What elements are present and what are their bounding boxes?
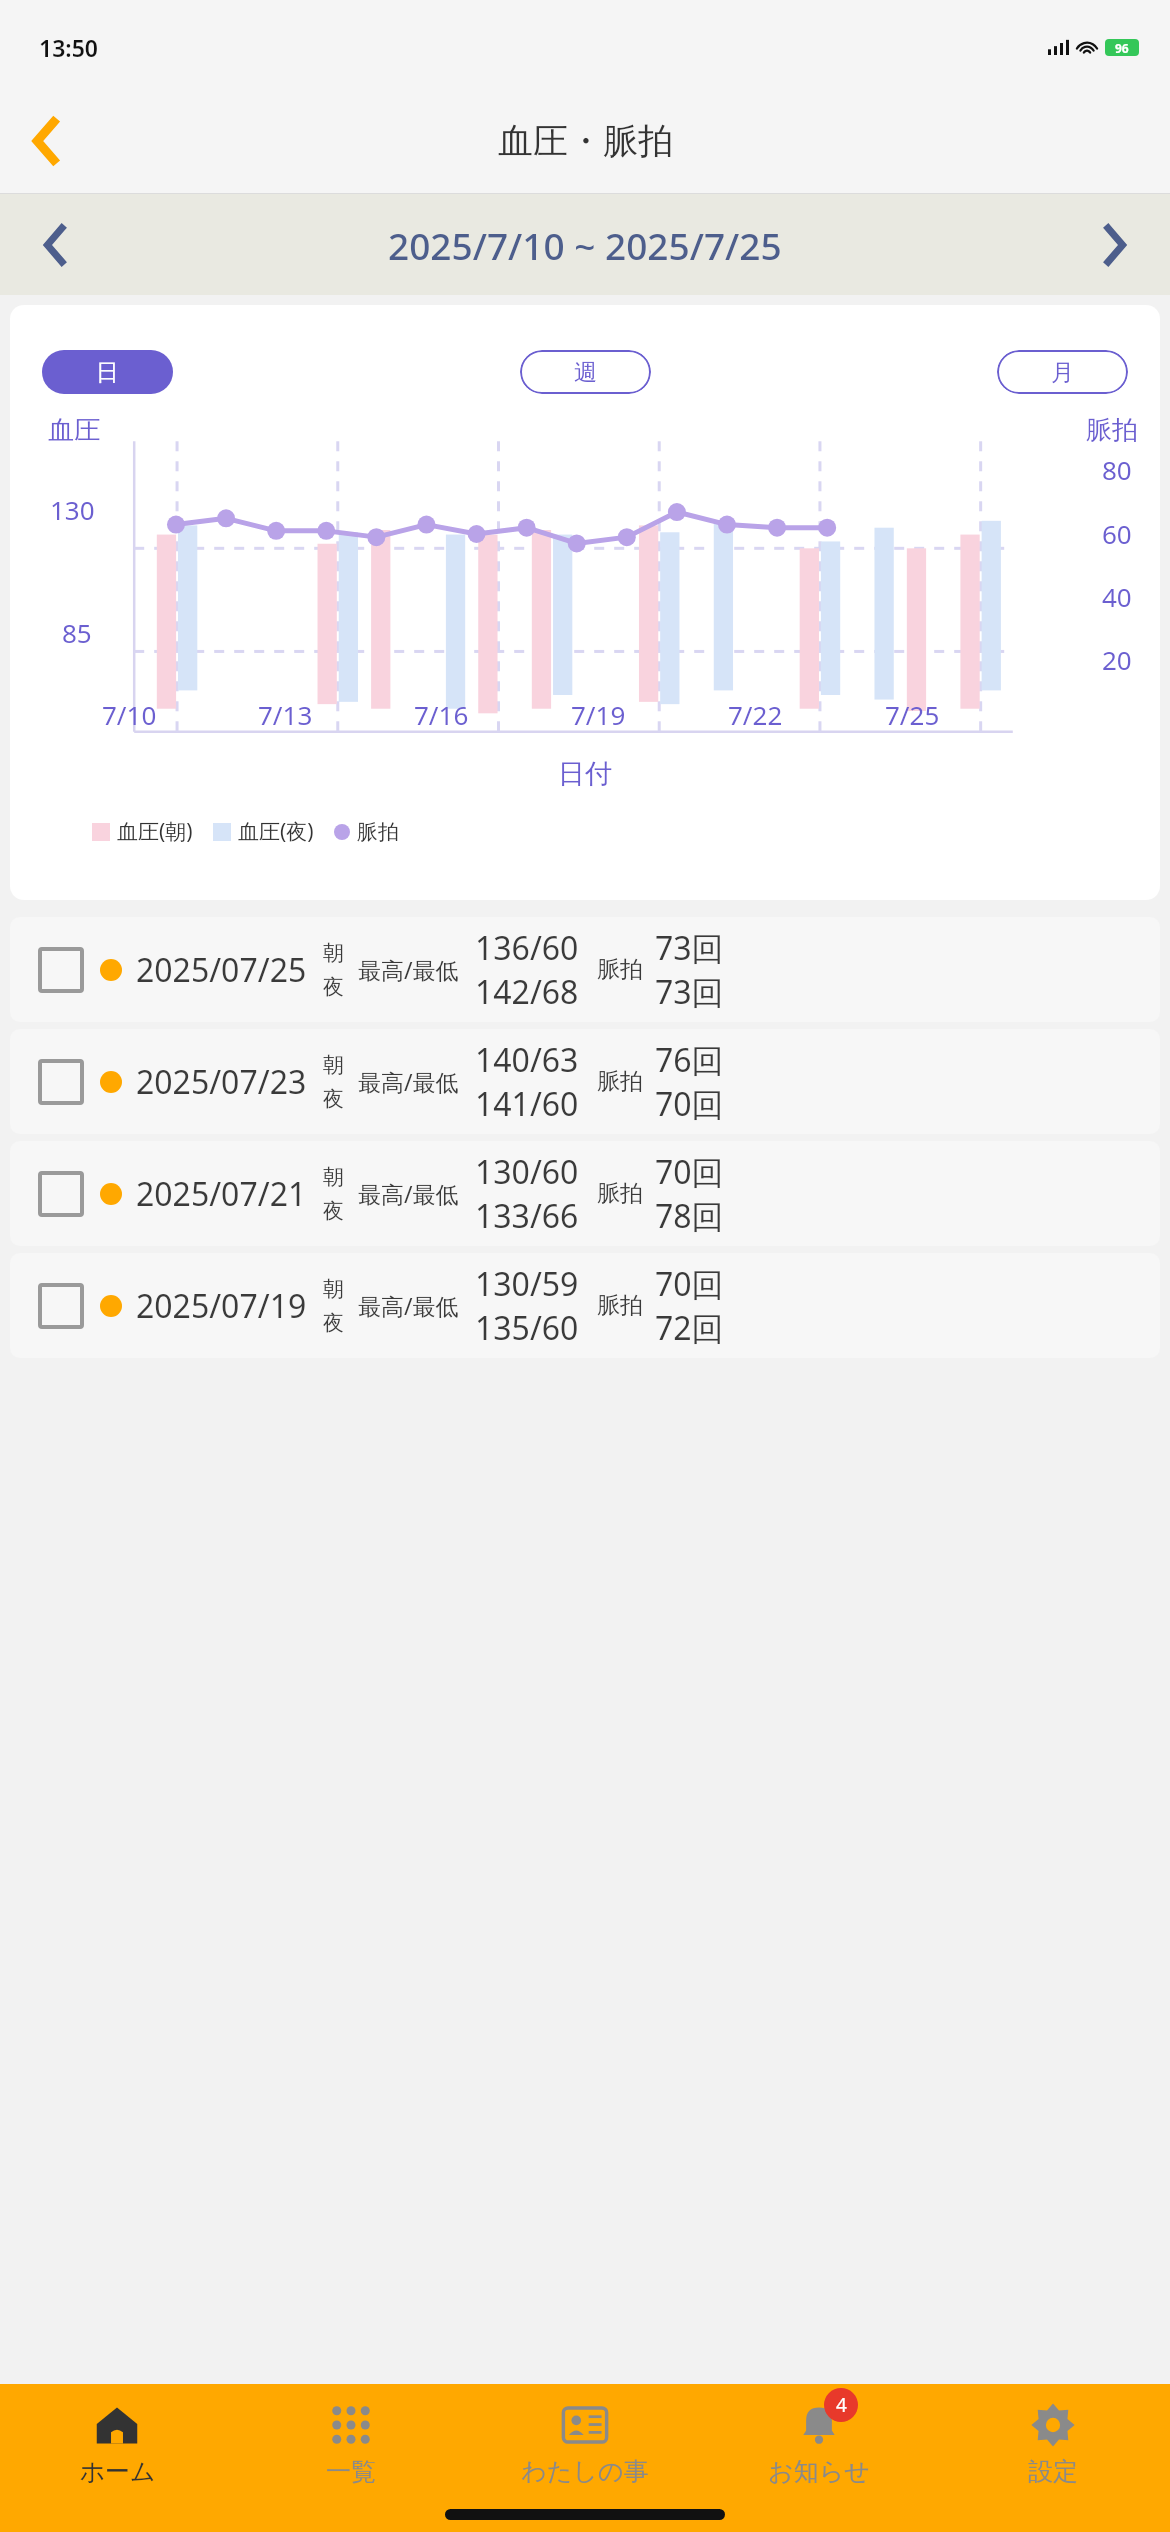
button[interactable]: 4 — [702, 2402, 936, 2487]
staticText: 142/68 — [475, 970, 579, 1014]
button[interactable]: 一覧 — [234, 2402, 468, 2487]
staticText: 血圧 — [48, 414, 100, 447]
button[interactable]: Next period — [1085, 215, 1145, 275]
staticText: 最高/最低 — [358, 954, 459, 985]
staticText: 130/59 — [475, 1262, 579, 1306]
staticText: 135/60 — [475, 1306, 579, 1350]
staticText: 血圧(朝) — [117, 817, 193, 846]
staticText: 脈拍 — [597, 1291, 643, 1320]
staticText: 夜 — [323, 974, 344, 1000]
button[interactable]: 設定 — [936, 2402, 1170, 2487]
staticText: 脈拍 — [597, 955, 643, 984]
staticText: 月 — [1051, 358, 1074, 387]
staticText: 70回 — [655, 1150, 724, 1194]
staticText: 85 — [62, 615, 92, 650]
staticText: 脈拍 — [1086, 414, 1138, 447]
staticText: 朝 — [323, 940, 344, 966]
button[interactable]: 月 — [997, 350, 1128, 394]
staticText: 7/25 — [885, 697, 940, 732]
staticText: 13:50 — [39, 32, 98, 63]
staticText: 140/63 — [475, 1038, 579, 1082]
staticText: わたしの事 — [521, 2456, 649, 2487]
staticText: 一覧 — [326, 2456, 376, 2487]
staticText: 朝 — [323, 1164, 344, 1190]
staticText: 7/19 — [571, 697, 626, 732]
staticText: お知らせ — [768, 2456, 870, 2487]
staticText: 136/60 — [475, 926, 579, 970]
button[interactable]: 2025/07/19 — [10, 1253, 1160, 1358]
staticText: 130/60 — [475, 1150, 579, 1194]
button[interactable]: 2025/07/23 — [10, 1029, 1160, 1134]
staticText: 日付 — [558, 757, 612, 791]
staticText: ホーム — [79, 2456, 156, 2487]
staticText: 2025/7/10 ~ 2025/7/25 — [388, 220, 782, 270]
staticText: 脈拍 — [357, 819, 399, 845]
staticText: 夜 — [323, 1310, 344, 1336]
staticText: 133/66 — [475, 1194, 579, 1238]
staticText: 最高/最低 — [358, 1290, 459, 1321]
button[interactable]: 2025/07/25 — [10, 917, 1160, 1022]
staticText: 血圧(夜) — [238, 817, 314, 846]
button[interactable]: ホーム — [0, 2402, 234, 2487]
staticText: 7/10 — [102, 697, 157, 732]
staticText: 2025/07/19 — [136, 1284, 307, 1328]
staticText: 70回 — [655, 1082, 724, 1126]
staticText: 週 — [574, 358, 597, 387]
staticText: 70回 — [655, 1262, 724, 1306]
staticText: 76回 — [655, 1038, 724, 1082]
staticText: 2025/07/25 — [136, 948, 307, 992]
staticText: 2025/07/21 — [136, 1172, 307, 1216]
staticText: 夜 — [323, 1198, 344, 1224]
staticText: 40 — [1102, 579, 1132, 614]
staticText: 73回 — [655, 970, 724, 1014]
staticText: 血圧・脈拍 — [498, 119, 673, 163]
button[interactable]: 2025/07/21 — [10, 1141, 1160, 1246]
staticText: 4 — [836, 2392, 847, 2418]
button[interactable]: Back — [18, 113, 74, 169]
staticText: 日 — [96, 358, 119, 387]
staticText: 朝 — [323, 1276, 344, 1302]
button[interactable]: Previous period — [25, 215, 85, 275]
button[interactable]: わたしの事 — [468, 2402, 702, 2487]
staticText: 7/16 — [414, 697, 469, 732]
staticText: 73回 — [655, 926, 724, 970]
staticText: 脈拍 — [597, 1179, 643, 1208]
staticText: 60 — [1102, 516, 1132, 551]
staticText: 最高/最低 — [358, 1178, 459, 1209]
staticText: 脈拍 — [597, 1067, 643, 1096]
staticText: 設定 — [1028, 2456, 1078, 2487]
staticText: 7/13 — [258, 697, 313, 732]
staticText: 80 — [1102, 452, 1132, 487]
staticText: 72回 — [655, 1306, 724, 1350]
staticText: 141/60 — [475, 1082, 579, 1126]
staticText: 2025/07/23 — [136, 1060, 307, 1104]
staticText: 7/22 — [728, 697, 783, 732]
button[interactable]: 日 — [42, 350, 173, 394]
button[interactable]: 週 — [520, 350, 651, 394]
staticText: 78回 — [655, 1194, 724, 1238]
staticText: 20 — [1102, 642, 1132, 677]
staticText: 96 — [1115, 40, 1129, 56]
staticText: 最高/最低 — [358, 1066, 459, 1097]
staticText: 夜 — [323, 1086, 344, 1112]
staticText: 130 — [50, 492, 95, 527]
staticText: 朝 — [323, 1052, 344, 1078]
